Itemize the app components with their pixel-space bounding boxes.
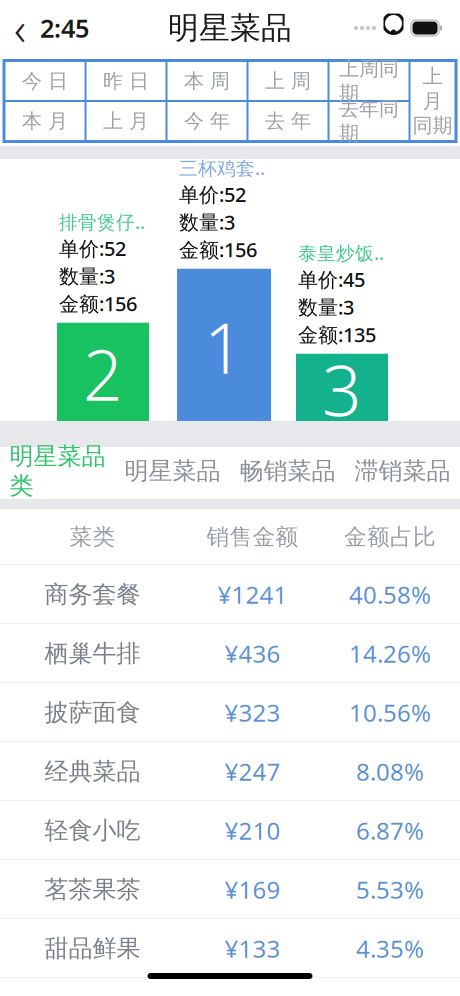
- staticText: 6.87%: [356, 815, 424, 846]
- staticText: ‹: [14, 0, 26, 58]
- staticText: 销售金额: [206, 523, 298, 551]
- staticText: 去 年: [265, 109, 311, 133]
- staticText: 8.08%: [356, 756, 424, 787]
- staticText: 上周同期: [339, 56, 399, 105]
- button[interactable]: 去年同期: [329, 102, 408, 140]
- staticText: 去年同期: [339, 96, 399, 145]
- button[interactable]: 本 月: [5, 102, 84, 140]
- staticText: 本 月: [22, 109, 68, 133]
- staticText: 明星菜品: [124, 456, 220, 486]
- staticText: 滞销菜品: [354, 456, 450, 486]
- staticText: 昨 日: [103, 69, 149, 93]
- staticText: 今 年: [184, 109, 230, 133]
- button[interactable]: 披萨面食: [0, 683, 460, 742]
- button[interactable]: 经典菜品: [0, 742, 460, 801]
- button[interactable]: 昨 日: [86, 62, 165, 100]
- staticText: ¥169: [224, 874, 280, 905]
- button[interactable]: 畅销菜品: [230, 447, 345, 499]
- staticText: 甜品鲜果: [44, 934, 140, 963]
- button[interactable]: 上周同期: [329, 62, 408, 100]
- staticText: 数量:3: [59, 263, 115, 289]
- staticText: 商务套餐: [44, 580, 140, 609]
- staticText: 上 月: [422, 64, 442, 113]
- staticText: 金额:156: [59, 290, 137, 317]
- button[interactable]: 明星菜品类: [0, 447, 115, 499]
- staticText: 2:45: [40, 11, 89, 45]
- staticText: 金额:135: [298, 321, 376, 348]
- staticText: 经典菜品: [44, 757, 140, 786]
- staticText: 3: [322, 343, 362, 435]
- button[interactable]: 茗茶果茶: [0, 860, 460, 919]
- staticText: 金额:156: [179, 236, 257, 263]
- staticText: 栖巢牛排: [44, 639, 140, 668]
- staticText: 同期: [412, 113, 452, 138]
- button[interactable]: 今 日: [5, 62, 84, 100]
- staticText: 金额占比: [344, 523, 436, 551]
- staticText: 今 日: [22, 69, 68, 93]
- staticText: ¥436: [224, 638, 280, 669]
- staticText: 2: [83, 328, 123, 420]
- button[interactable]: 今 年: [167, 102, 246, 140]
- staticText: 数量:3: [179, 209, 235, 235]
- staticText: ¥133: [224, 933, 280, 964]
- staticText: 单价:45: [298, 266, 365, 293]
- staticText: 14.26%: [349, 638, 431, 669]
- staticText: ¥247: [224, 756, 280, 787]
- button[interactable]: 栖巢牛排: [0, 624, 460, 683]
- staticText: 茗茶果茶: [44, 875, 140, 904]
- staticText: 上 月: [103, 109, 149, 133]
- staticText: 披萨面食: [44, 698, 140, 727]
- button[interactable]: 滞销菜品: [345, 447, 460, 499]
- staticText: 40.58%: [349, 579, 431, 610]
- staticText: 畅销菜品: [239, 456, 335, 486]
- staticText: 单价:52: [59, 235, 126, 262]
- button[interactable]: 本 周: [167, 62, 246, 100]
- staticText: 单价:52: [179, 181, 246, 208]
- staticText: 轻食小吃: [44, 816, 140, 845]
- button[interactable]: 轻食小吃: [0, 801, 460, 860]
- staticText: 明星菜品类: [9, 441, 105, 500]
- staticText: 数量:3: [298, 294, 354, 320]
- staticText: 1: [204, 301, 244, 393]
- staticText: ¥1241: [217, 579, 287, 610]
- staticText: 4.35%: [356, 933, 424, 964]
- button[interactable]: 上 周: [248, 62, 327, 100]
- staticText: 5.53%: [356, 874, 424, 905]
- staticText: 明星菜品: [168, 9, 292, 47]
- staticText: 本 周: [184, 69, 230, 93]
- staticText: ¥323: [224, 697, 280, 728]
- button[interactable]: 上 月: [86, 102, 165, 140]
- staticText: ¥210: [224, 815, 280, 846]
- button[interactable]: 明星菜品: [115, 447, 230, 499]
- button[interactable]: 甜品鲜果: [0, 919, 460, 978]
- staticText: 排骨煲仔..: [59, 209, 145, 234]
- staticText: 10.56%: [349, 697, 431, 728]
- staticText: 泰皇炒饭..: [298, 240, 384, 265]
- staticText: 上 周: [265, 69, 311, 93]
- button[interactable]: 上 月: [410, 62, 454, 140]
- button[interactable]: Back: [0, 6, 40, 50]
- staticText: 菜类: [69, 523, 115, 551]
- button[interactable]: 商务套餐: [0, 565, 460, 624]
- staticText: 三杯鸡套..: [179, 155, 265, 180]
- button[interactable]: 去 年: [248, 102, 327, 140]
